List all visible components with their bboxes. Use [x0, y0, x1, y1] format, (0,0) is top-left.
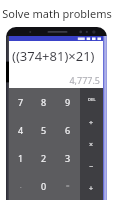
button[interactable]: 2	[32, 144, 56, 172]
button[interactable]: 5	[32, 116, 56, 144]
staticText: .	[20, 182, 22, 190]
staticText: +	[89, 184, 94, 194]
button[interactable]: Subtract	[80, 156, 103, 178]
staticText: 7	[18, 96, 24, 108]
button[interactable]: Multiply	[80, 134, 103, 156]
staticText: 9	[65, 96, 71, 108]
button[interactable]: 3	[56, 144, 80, 172]
staticText: 5	[41, 124, 47, 136]
staticText: 3	[65, 152, 71, 164]
button[interactable]: 1	[9, 144, 32, 172]
button[interactable]: Add	[80, 178, 103, 200]
button[interactable]: 7	[9, 88, 32, 116]
staticText: 4,777.5	[12, 74, 100, 86]
button[interactable]: =	[56, 172, 80, 200]
staticText: 8	[41, 96, 47, 108]
button[interactable]: Delete	[80, 88, 103, 111]
staticText: 6	[65, 124, 71, 136]
staticText: 4	[18, 124, 24, 136]
staticText: Solve math problems	[2, 6, 112, 21]
button[interactable]: 0	[32, 172, 56, 200]
button[interactable]: 4	[9, 116, 32, 144]
staticText: 1	[18, 152, 24, 164]
staticText: −	[89, 162, 94, 172]
button[interactable]: 8	[32, 88, 56, 116]
staticText: ×	[89, 140, 94, 150]
staticText: DEL	[88, 97, 96, 102]
button[interactable]: 9	[56, 88, 80, 116]
staticText: 2	[41, 152, 47, 164]
staticText: ((374+81)×21)÷2	[12, 47, 100, 65]
staticText: =	[66, 182, 70, 190]
button[interactable]: Divide	[80, 111, 103, 134]
staticText: 0	[41, 180, 47, 192]
staticText: ÷	[89, 118, 94, 128]
button[interactable]: 6	[56, 116, 80, 144]
